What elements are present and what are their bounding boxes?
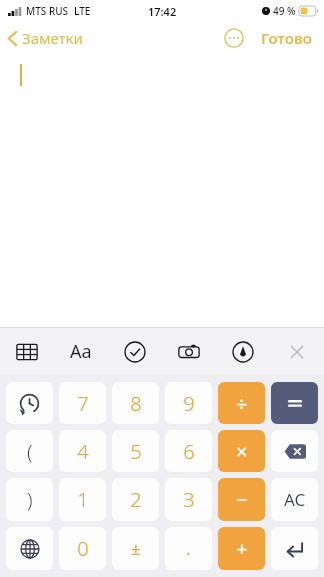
button[interactable]: Change keyboard (6, 527, 53, 570)
staticText: ± (131, 537, 141, 560)
button[interactable]: 4 (59, 430, 106, 472)
button[interactable]: ± (112, 527, 159, 570)
staticText: − (236, 486, 248, 513)
staticText: . (186, 537, 191, 560)
button[interactable]: 9 (165, 382, 212, 424)
button[interactable]: 3 (165, 478, 212, 521)
staticText: 8 (130, 390, 142, 417)
staticText: 1 (77, 486, 89, 513)
button[interactable]: − (218, 478, 265, 521)
staticText: 6 (183, 438, 195, 465)
button[interactable]: Заметки (0, 24, 93, 52)
button[interactable]: Text format (54, 328, 108, 375)
button[interactable]: ) (6, 478, 53, 521)
staticText: Готово (261, 28, 312, 48)
button[interactable]: 7 (59, 382, 106, 424)
staticText: AC (284, 488, 306, 511)
button[interactable]: . (165, 527, 212, 570)
staticText: MTS RUS (26, 4, 69, 18)
button[interactable]: 1 (59, 478, 106, 521)
button[interactable] (271, 382, 318, 424)
button[interactable]: ÷ (218, 382, 265, 424)
staticText: 3 (183, 486, 195, 513)
button[interactable]: Return (271, 527, 318, 570)
button[interactable]: Close keyboard (270, 328, 324, 375)
staticText: Aa (70, 339, 92, 364)
button[interactable]: Backspace (271, 430, 318, 472)
staticText: ) (27, 486, 33, 513)
staticText: 2 (130, 486, 142, 513)
button[interactable]: History (6, 382, 53, 424)
staticText: 49 % (273, 4, 296, 18)
button[interactable]: 0 (59, 527, 106, 570)
staticText: 0 (77, 535, 89, 562)
button[interactable]: 8 (112, 382, 159, 424)
button[interactable]: Table (0, 328, 54, 375)
staticText: 5 (130, 438, 142, 465)
button[interactable]: + (218, 527, 265, 570)
staticText: Заметки (22, 28, 83, 48)
button[interactable]: × (218, 430, 265, 472)
staticText: 9 (183, 390, 195, 417)
button[interactable]: 2 (112, 478, 159, 521)
staticText: × (236, 438, 248, 465)
staticText: 7 (77, 390, 89, 417)
button[interactable]: Готово (257, 24, 316, 52)
button[interactable]: ( (6, 430, 53, 472)
button[interactable]: 6 (165, 430, 212, 472)
button[interactable]: Markup (216, 328, 270, 375)
staticText: 17:42 (148, 4, 177, 19)
button[interactable]: More options (221, 25, 247, 51)
staticText: + (236, 535, 248, 562)
button[interactable]: AC (271, 478, 318, 521)
staticText: ( (27, 438, 33, 465)
staticText: LTE (74, 4, 91, 18)
button[interactable]: Camera (162, 328, 216, 375)
staticText: ÷ (236, 390, 248, 417)
button[interactable]: Checklist (108, 328, 162, 375)
staticText: 4 (77, 438, 89, 465)
button[interactable]: 5 (112, 430, 159, 472)
